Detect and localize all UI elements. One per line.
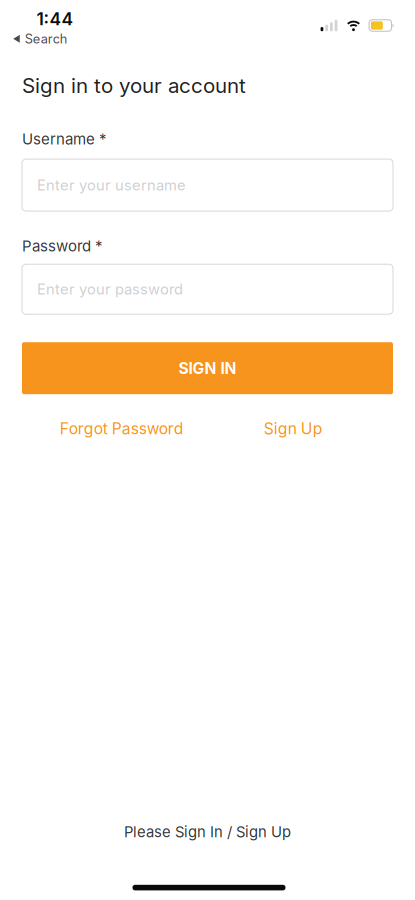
- staticText: Sign in to your account: [22, 73, 246, 98]
- button[interactable]: Forgot Password: [36, 419, 207, 438]
- staticText: Password *: [22, 237, 103, 255]
- button[interactable]: Enter your password: [22, 264, 393, 314]
- staticText: Enter your username: [37, 176, 186, 194]
- staticText: Sign Up: [264, 419, 323, 438]
- staticText: Please Sign In / Sign Up: [124, 823, 291, 841]
- staticText: Username *: [22, 130, 107, 148]
- staticText: Enter your password: [37, 280, 183, 298]
- staticText: SIGN IN: [178, 359, 236, 378]
- staticText: Forgot Password: [60, 419, 184, 438]
- button[interactable]: Back to Search: [13, 31, 68, 47]
- staticText: Search: [25, 31, 68, 47]
- button[interactable]: SIGN IN: [22, 342, 393, 394]
- button[interactable]: Enter your username: [22, 159, 393, 211]
- button[interactable]: Sign Up: [207, 419, 379, 438]
- staticText: 1:44: [36, 8, 73, 30]
